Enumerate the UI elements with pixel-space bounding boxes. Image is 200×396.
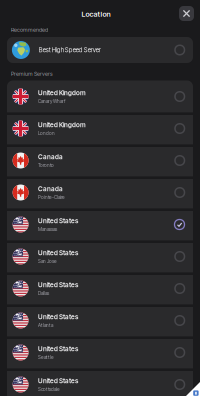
- staticText: San Jose: [38, 258, 57, 264]
- button[interactable]: Canada: [7, 176, 193, 208]
- staticText: United Kingdom: [38, 121, 86, 129]
- button[interactable]: Best High Speed Server: [7, 37, 193, 63]
- button[interactable]: United States: [7, 240, 193, 272]
- staticText: United States: [38, 217, 78, 225]
- button[interactable]: United States: [7, 272, 193, 304]
- staticText: Recommended: [11, 26, 48, 33]
- staticText: Premium Servers: [11, 70, 53, 77]
- staticText: Canada: [38, 185, 63, 193]
- staticText: Canada: [38, 153, 63, 161]
- button[interactable]: United Kingdom: [7, 80, 193, 112]
- staticText: United States: [38, 313, 78, 321]
- staticText: United States: [38, 249, 78, 257]
- staticText: Atlanta: [38, 322, 53, 328]
- staticText: United Kingdom: [38, 89, 86, 97]
- staticText: Location: [81, 10, 110, 18]
- staticText: London: [38, 130, 55, 136]
- button[interactable]: Canada: [7, 144, 193, 176]
- staticText: Seattle: [38, 354, 54, 360]
- staticText: Toronto: [38, 162, 54, 168]
- staticText: Pointe-Claire: [38, 194, 65, 200]
- staticText: United States: [38, 345, 78, 353]
- staticText: Manassas: [38, 226, 57, 232]
- button[interactable]: United States: [7, 336, 193, 368]
- button[interactable]: United States: [7, 368, 193, 396]
- staticText: Best High Speed Server: [39, 46, 101, 54]
- staticText: United States: [38, 281, 78, 289]
- button[interactable]: United States: [7, 304, 193, 336]
- staticText: Canary Wharf: [38, 98, 65, 104]
- button[interactable]: United Kingdom: [7, 112, 193, 144]
- staticText: United States: [38, 377, 78, 385]
- button[interactable]: United States: [7, 208, 193, 240]
- button[interactable]: Close: [179, 6, 194, 21]
- staticText: Dallas: [38, 290, 49, 296]
- staticText: Scottsdale: [38, 386, 60, 392]
